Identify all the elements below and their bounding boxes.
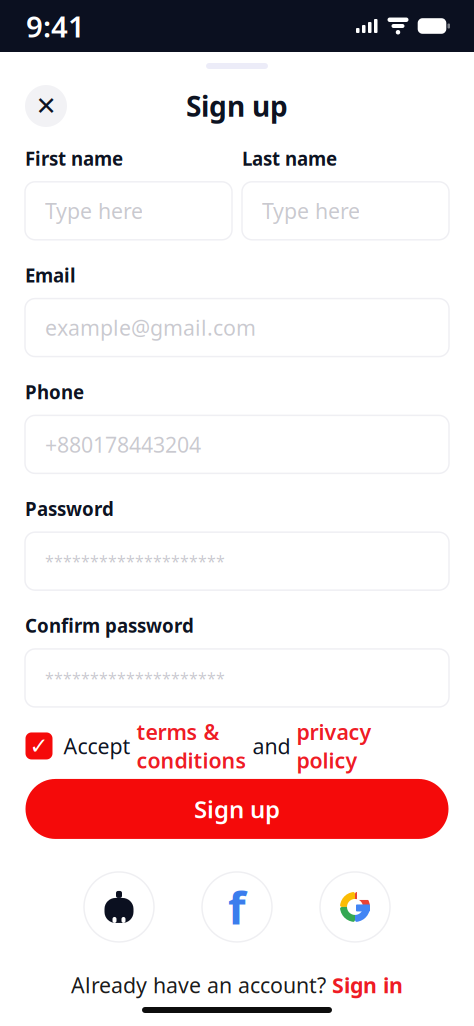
staticText: First name xyxy=(25,146,123,171)
button[interactable]: ******************** xyxy=(25,649,449,707)
staticText: ******************** xyxy=(45,550,225,572)
staticText: f xyxy=(228,877,246,937)
staticText: Sign in xyxy=(332,971,403,999)
button[interactable]: ******************** xyxy=(25,532,449,590)
staticText: +880178443204 xyxy=(45,430,201,458)
staticText: ✓ xyxy=(29,733,48,759)
staticText: Already have an account? xyxy=(71,971,332,999)
staticText: Phone xyxy=(25,380,84,404)
staticText: Password xyxy=(25,496,114,521)
button[interactable]: Already have an account? xyxy=(71,970,403,1000)
staticText: 9:41 xyxy=(26,6,85,45)
button[interactable]: Sign up with Apple xyxy=(84,872,154,942)
staticText: Last name xyxy=(242,146,337,171)
button[interactable]: Type here xyxy=(242,182,449,240)
button[interactable]: Sign up xyxy=(25,779,448,839)
staticText: example@gmail.com xyxy=(45,313,256,342)
staticText: terms & conditions xyxy=(136,718,246,774)
staticText: Sign up xyxy=(186,87,288,125)
button[interactable]: Close xyxy=(25,85,67,127)
staticText: Sign up xyxy=(194,793,280,825)
button[interactable]: Type here xyxy=(25,182,232,240)
button[interactable]: example@gmail.com xyxy=(25,299,449,357)
staticText: Email xyxy=(25,263,76,288)
button[interactable]: Sign up with Facebook xyxy=(202,872,272,942)
staticText: Type here xyxy=(262,197,360,225)
button[interactable]: ✓ xyxy=(25,730,448,762)
staticText: Confirm password xyxy=(25,613,194,638)
staticText: Accept xyxy=(63,732,136,760)
staticText: ******************** xyxy=(45,667,225,688)
button[interactable]: Sign up with Google xyxy=(320,872,390,942)
staticText: ✕ xyxy=(35,92,56,120)
staticText: privacy policy xyxy=(296,718,371,774)
staticText: and xyxy=(246,732,296,760)
button[interactable]: +880178443204 xyxy=(25,415,449,473)
staticText: Type here xyxy=(45,197,143,225)
